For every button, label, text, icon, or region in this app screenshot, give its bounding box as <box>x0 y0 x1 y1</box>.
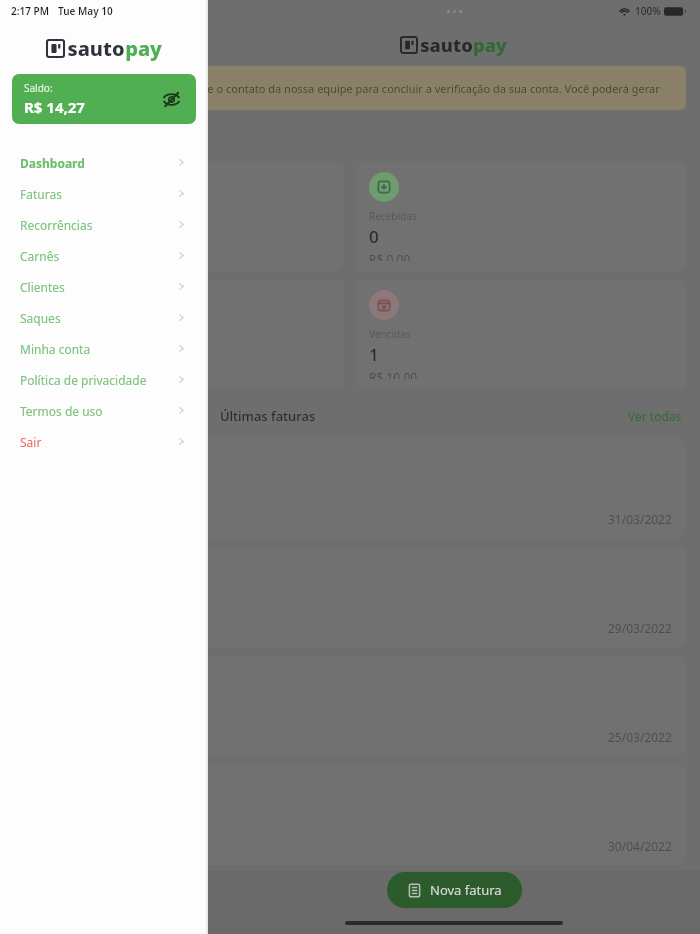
button[interactable]: A vencer <box>14 280 344 389</box>
staticText: Nova fatura <box>430 881 502 899</box>
staticText: R$ 14,27 <box>24 97 85 117</box>
staticText: Carnês <box>20 248 60 264</box>
button[interactable]: Ver todas <box>624 404 686 428</box>
staticText: Tue May 10 <box>58 4 113 18</box>
button[interactable]: Clientes <box>0 271 208 302</box>
staticText: Faturas <box>20 186 62 202</box>
button[interactable]: Emitidas <box>14 162 344 271</box>
button[interactable]: ASSINATURA MENSAL <box>14 765 686 865</box>
staticText: 1 <box>27 225 37 248</box>
button[interactable]: Faturas <box>0 178 208 209</box>
button[interactable]: MENSALIDADE <box>14 438 686 538</box>
button[interactable]: Saques <box>0 302 208 333</box>
staticText: Recebidas <box>369 209 417 223</box>
button[interactable]: Ocultar saldo <box>158 86 184 112</box>
staticText: Ver todas <box>628 408 682 424</box>
staticText: Clientes <box>20 279 65 295</box>
staticText: R$ 0,00 <box>27 369 69 379</box>
button[interactable]: Política de privacidade <box>0 364 208 395</box>
button[interactable]: Dashboard <box>0 147 208 178</box>
staticText: R$ 10,00 <box>27 251 76 261</box>
staticText: Saques <box>20 310 61 326</box>
button[interactable]: Recorrências <box>0 209 208 240</box>
staticText: R$ 10,00 <box>369 369 418 379</box>
button[interactable]: Nova fatura <box>387 872 522 908</box>
staticText: Sua conta está em análise. Aguarde o con… <box>30 81 672 96</box>
button[interactable]: Carnês <box>0 240 208 271</box>
staticText: pay <box>473 32 507 57</box>
staticText: 0 <box>369 225 379 248</box>
button[interactable]: Sair <box>0 426 208 457</box>
staticText: Emitidas <box>27 209 68 223</box>
staticText: Sair <box>20 434 42 450</box>
button[interactable]: Minha conta <box>0 333 208 364</box>
staticText: Vencidas <box>369 327 411 341</box>
staticText: 1 <box>369 343 379 366</box>
button[interactable]: Termos de uso <box>0 395 208 426</box>
staticText: Termos de uso <box>20 403 103 419</box>
staticText: sauto <box>420 32 473 57</box>
staticText: 0 <box>27 343 37 366</box>
staticText: 25/03/2022 <box>608 729 672 745</box>
staticText: R$ 0,00 <box>369 251 411 261</box>
staticText: Minha conta <box>20 341 91 357</box>
staticText: 100% <box>635 4 661 18</box>
staticText: pay <box>125 35 162 62</box>
staticText: Política de privacidade <box>20 372 147 388</box>
button[interactable]: Vencidas <box>356 280 686 389</box>
button[interactable]: SERVIÇO PRESTADO <box>14 656 686 756</box>
button[interactable] <box>0 0 700 934</box>
staticText: Saldo: <box>24 81 53 95</box>
button[interactable]: Recebidas <box>356 162 686 271</box>
button[interactable]: Saldo: <box>12 74 196 124</box>
staticText: 31/03/2022 <box>608 511 672 527</box>
staticText: 30/04/2022 <box>608 838 672 854</box>
staticText: 29/03/2022 <box>608 620 672 636</box>
staticText: Dashboard <box>20 155 85 171</box>
staticText: Últimas faturas <box>220 407 316 425</box>
staticText: 2:17 PM <box>11 4 49 18</box>
button[interactable]: FATURA COM DESCRIÇÃO <box>14 547 686 647</box>
staticText: Recorrências <box>20 217 93 233</box>
staticText: sauto <box>67 35 125 62</box>
